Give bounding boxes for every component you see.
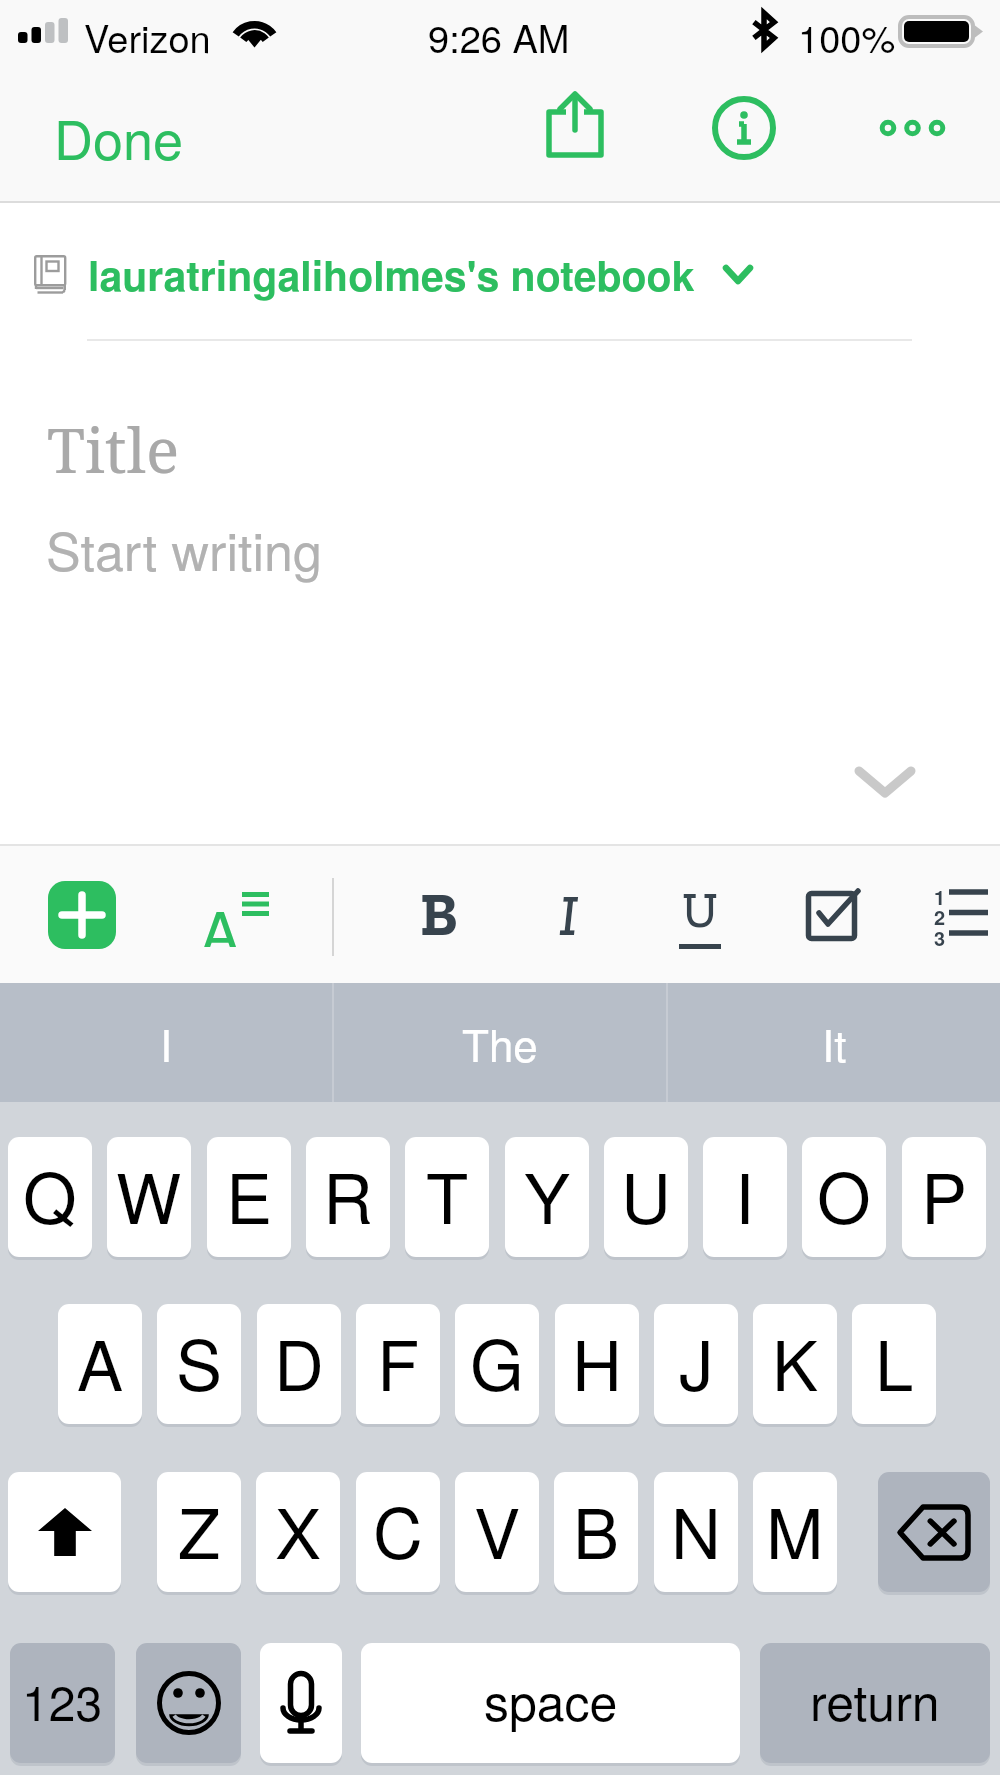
button[interactable]: J	[654, 1304, 738, 1424]
button[interactable]: N	[654, 1472, 738, 1592]
staticText: W	[116, 1145, 182, 1244]
staticText: F	[377, 1312, 420, 1411]
button[interactable]: W	[107, 1137, 191, 1257]
button[interactable]: Done	[54, 70, 184, 203]
staticText: N	[671, 1480, 721, 1579]
button[interactable]: return	[760, 1643, 990, 1763]
staticText: R	[323, 1145, 373, 1244]
button[interactable]: More options	[868, 80, 958, 176]
staticText: U	[682, 880, 718, 940]
button[interactable]: X	[256, 1472, 340, 1592]
staticText: S	[176, 1312, 223, 1411]
button[interactable]: F	[356, 1304, 440, 1424]
button[interactable]: Bold	[403, 872, 475, 956]
button[interactable]: C	[356, 1472, 440, 1592]
button[interactable]: Italic	[533, 872, 605, 956]
button[interactable]: U	[604, 1137, 688, 1257]
staticText: B	[573, 1480, 620, 1579]
staticText: A	[77, 1312, 124, 1411]
button[interactable]: K	[753, 1304, 837, 1424]
staticText: O	[817, 1145, 871, 1244]
staticText: The	[462, 1011, 538, 1074]
button[interactable]: Dictate	[260, 1643, 342, 1763]
staticText: Start writing	[46, 511, 322, 585]
staticText: Done	[54, 98, 184, 175]
button[interactable]: Underline	[664, 872, 736, 956]
button[interactable]: M	[753, 1472, 837, 1592]
button[interactable]: S	[157, 1304, 241, 1424]
button[interactable]: O	[802, 1137, 886, 1257]
staticText: V	[474, 1480, 521, 1579]
staticText: A	[200, 887, 241, 947]
staticText: J	[679, 1312, 714, 1411]
staticText: B	[420, 878, 458, 950]
button[interactable]: I	[703, 1137, 787, 1257]
button[interactable]: Numbered list	[925, 872, 997, 956]
button[interactable]: Backspace	[878, 1472, 990, 1592]
staticText: lauratringaliholmes's notebook	[88, 245, 695, 304]
staticText: 3	[934, 923, 946, 952]
button[interactable]: Text style	[186, 874, 278, 956]
button[interactable]: L	[852, 1304, 936, 1424]
button[interactable]: G	[455, 1304, 539, 1424]
button[interactable]: lauratringaliholmes's notebook	[34, 223, 753, 325]
staticText: Title	[47, 407, 180, 491]
button[interactable]: V	[455, 1472, 539, 1592]
staticText: Z	[178, 1480, 221, 1579]
staticText: 1	[934, 882, 946, 911]
staticText: Q	[23, 1145, 77, 1244]
staticText: 2	[934, 902, 946, 931]
button[interactable]: D	[257, 1304, 341, 1424]
staticText: 123	[22, 1666, 103, 1735]
staticText: T	[426, 1145, 469, 1244]
button[interactable]: E	[207, 1137, 291, 1257]
staticText: I	[160, 1011, 173, 1074]
staticText: 100%	[798, 9, 896, 63]
button[interactable]: Y	[505, 1137, 589, 1257]
button[interactable]: The	[334, 983, 666, 1102]
button[interactable]: Checklist	[797, 872, 869, 956]
staticText: 9:26 AM	[428, 9, 570, 63]
staticText: X	[275, 1480, 322, 1579]
staticText: M	[766, 1480, 824, 1579]
staticText: Y	[524, 1145, 571, 1244]
button[interactable]: Emoji	[136, 1643, 241, 1763]
staticText: It	[822, 1011, 847, 1074]
button[interactable]: Shift	[8, 1472, 121, 1592]
button[interactable]: P	[902, 1137, 986, 1257]
button[interactable]: Insert	[48, 881, 116, 949]
staticText: E	[226, 1145, 273, 1244]
staticText: U	[621, 1145, 671, 1244]
button[interactable]: T	[405, 1137, 489, 1257]
staticText: I	[735, 1145, 755, 1244]
button[interactable]: Q	[8, 1137, 92, 1257]
staticText: Verizon	[84, 9, 211, 63]
button[interactable]: Share	[531, 70, 619, 180]
staticText: return	[810, 1664, 940, 1736]
button[interactable]: Note info	[699, 80, 789, 176]
button[interactable]: H	[555, 1304, 639, 1424]
button[interactable]: space	[361, 1643, 740, 1763]
button[interactable]: B	[554, 1472, 638, 1592]
staticText: K	[772, 1312, 819, 1411]
staticText: H	[572, 1312, 622, 1411]
staticText: space	[484, 1664, 618, 1736]
staticText: L	[875, 1312, 914, 1411]
staticText: G	[470, 1312, 524, 1411]
staticText: C	[373, 1480, 423, 1579]
button[interactable]: Z	[157, 1472, 241, 1592]
button[interactable]: R	[306, 1137, 390, 1257]
staticText: D	[274, 1312, 324, 1411]
button[interactable]: I	[0, 983, 332, 1102]
button[interactable]: Collapse keyboard	[840, 737, 930, 827]
button[interactable]: A	[58, 1304, 142, 1424]
button[interactable]: It	[668, 983, 1000, 1102]
button[interactable]: Numbers	[10, 1643, 115, 1763]
staticText: I	[559, 878, 579, 950]
staticText: P	[921, 1145, 968, 1244]
